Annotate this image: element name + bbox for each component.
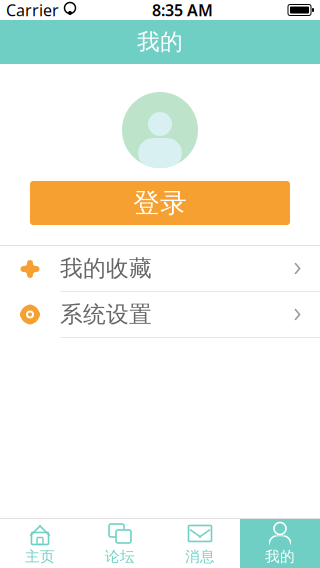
staticText: 论坛 <box>105 547 135 565</box>
staticText: 登录 <box>133 187 187 219</box>
staticText: 主页 <box>25 547 55 565</box>
staticText: Carrier <box>6 0 59 21</box>
staticText: 我的 <box>137 28 183 56</box>
button[interactable]: 主页 <box>0 519 80 568</box>
staticText: 系统设置 <box>60 301 152 328</box>
button[interactable]: 消息 <box>160 519 240 568</box>
staticText: 我的收藏 <box>60 255 152 282</box>
button[interactable]: 登录 <box>30 181 290 225</box>
staticText: 消息 <box>185 547 215 565</box>
staticText <box>59 0 63 21</box>
button[interactable]: 系统设置 <box>0 292 320 337</box>
staticText: 8:35 AM <box>152 0 213 21</box>
button[interactable]: 我的 <box>240 519 320 568</box>
button[interactable]: 我的收藏 <box>0 246 320 291</box>
staticText: 我的 <box>265 547 295 565</box>
button[interactable]: 论坛 <box>80 519 160 568</box>
